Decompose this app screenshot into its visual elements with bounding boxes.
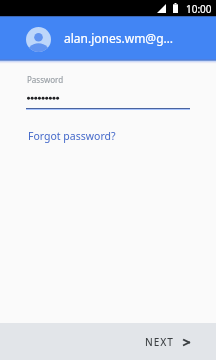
staticText: Password (27, 74, 64, 85)
staticText: NEXT (145, 335, 174, 349)
button[interactable]: Forgot password? (0, 129, 116, 143)
staticText: alan.jones.wm@g… (64, 30, 174, 46)
staticText: 10:00 (186, 2, 212, 16)
button[interactable]: NEXT (129, 326, 216, 358)
